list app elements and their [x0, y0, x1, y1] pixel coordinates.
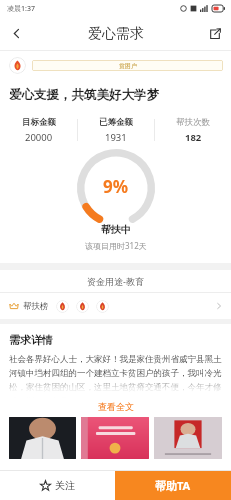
staticText: 9%	[103, 175, 129, 198]
staticText: 爱心支援，共筑美好大学梦	[9, 87, 159, 103]
button[interactable]: Photo 2	[81, 417, 149, 459]
staticText: 查看全文	[98, 401, 134, 412]
button[interactable]: 帮助TA	[115, 471, 231, 500]
button[interactable]: Photo 1	[9, 417, 76, 459]
staticText: 1931	[105, 131, 127, 144]
staticText: 贫困户	[119, 62, 137, 70]
staticText: 20000	[25, 131, 53, 144]
button[interactable]: 贫困户	[32, 60, 223, 71]
button[interactable]: 关注	[0, 471, 115, 500]
button[interactable]: 帮扶榜	[0, 293, 231, 319]
button[interactable]: Back	[0, 17, 33, 50]
staticText: 资金用途-教育	[87, 275, 144, 287]
staticText: 182	[185, 131, 202, 144]
button[interactable]: Photo 3	[154, 417, 222, 459]
staticText: 社会各界好心人士，大家好！我是家住贵州省威宁县黑土河镇中垱村四组的一个建档立卡贫…	[9, 354, 222, 398]
staticText: 帮扶中	[101, 223, 131, 236]
button[interactable]: 查看全文	[90, 399, 142, 414]
staticText: 帮扶榜	[23, 301, 49, 312]
staticText: 该项目用时312天	[85, 240, 147, 251]
staticText: 帮助TA	[155, 478, 191, 493]
staticText: 目标金额	[22, 117, 56, 128]
staticText: 已筹金额	[99, 117, 133, 128]
staticText: 需求详情	[9, 333, 53, 347]
staticText: 凌晨1:37	[7, 4, 35, 14]
staticText: 帮扶次数	[176, 117, 210, 128]
button[interactable]: Share	[198, 17, 231, 50]
staticText: 关注	[55, 479, 75, 492]
button[interactable]: 冷*松	[0, 51, 231, 79]
staticText: 爱心需求	[88, 25, 144, 43]
